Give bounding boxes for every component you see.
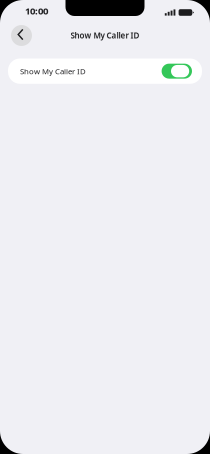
staticText: 10:00	[25, 4, 48, 17]
button[interactable]: Back	[8, 22, 35, 49]
button[interactable]: Show My Caller ID	[162, 64, 192, 79]
staticText: Show My Caller ID	[70, 30, 139, 41]
staticText: Show My Caller ID	[20, 66, 86, 76]
